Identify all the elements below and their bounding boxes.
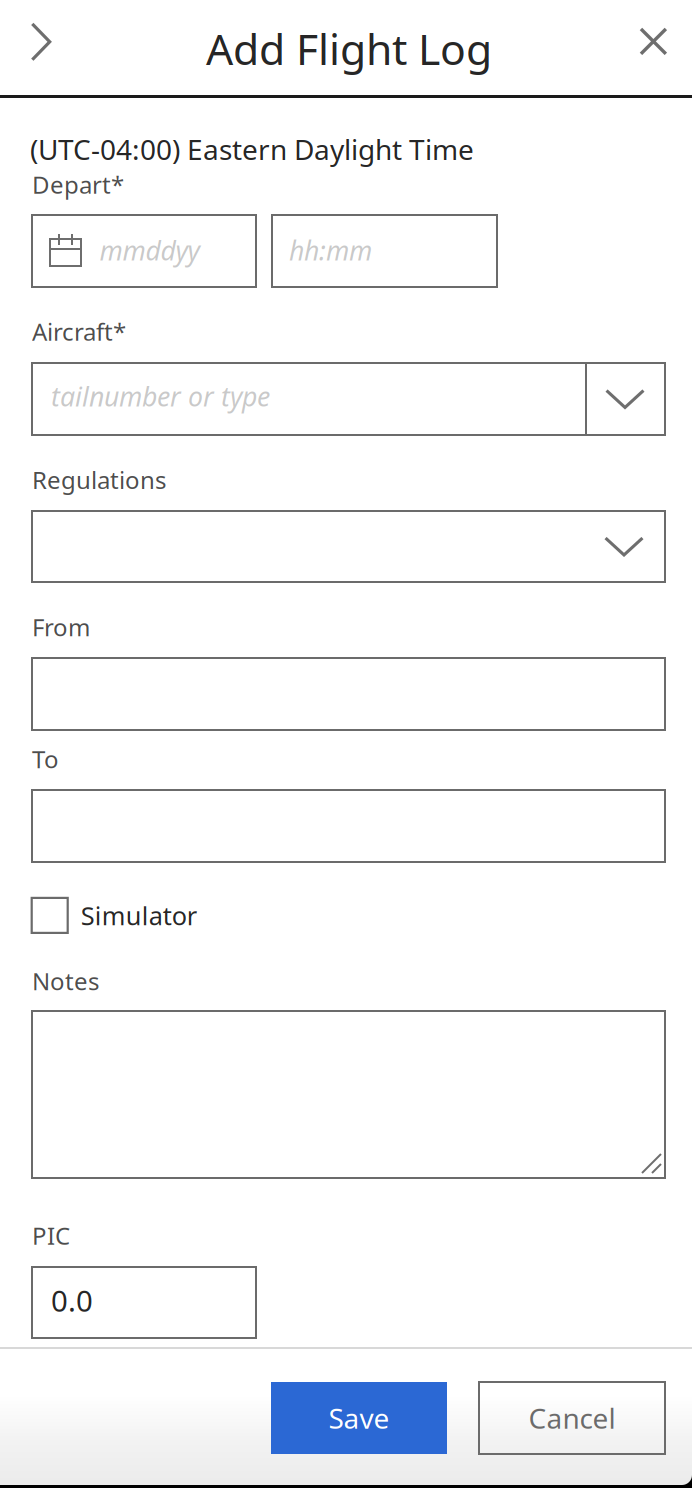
staticText: PIC (32, 1219, 70, 1251)
button[interactable]: Close (611, 0, 692, 83)
staticText: hh:mm (289, 232, 372, 268)
button[interactable]: Simulator (32, 894, 197, 936)
staticText: 0.0 (51, 1281, 93, 1320)
staticText: mmddyy (100, 232, 200, 268)
staticText: To (32, 743, 59, 775)
button[interactable]: Cancel (479, 1382, 665, 1454)
button[interactable]: Choose aircraft (585, 363, 665, 435)
staticText: Simulator (81, 899, 197, 932)
staticText: Notes (32, 965, 99, 997)
staticText: tailnumber or type (51, 378, 270, 414)
staticText: Depart* (32, 169, 124, 200)
button[interactable]: Forward (0, 0, 83, 84)
button[interactable]: Save (271, 1382, 447, 1454)
staticText: From (32, 611, 90, 643)
staticText: Regulations (32, 464, 166, 496)
staticText: Cancel (528, 1399, 615, 1437)
staticText: Add Flight Log (206, 20, 492, 77)
button[interactable]: Choose regulation (584, 511, 664, 582)
staticText: Save (328, 1399, 389, 1437)
staticText: (UTC-04:00) Eastern Daylight Time (30, 130, 474, 168)
staticText: Aircraft* (32, 316, 126, 347)
